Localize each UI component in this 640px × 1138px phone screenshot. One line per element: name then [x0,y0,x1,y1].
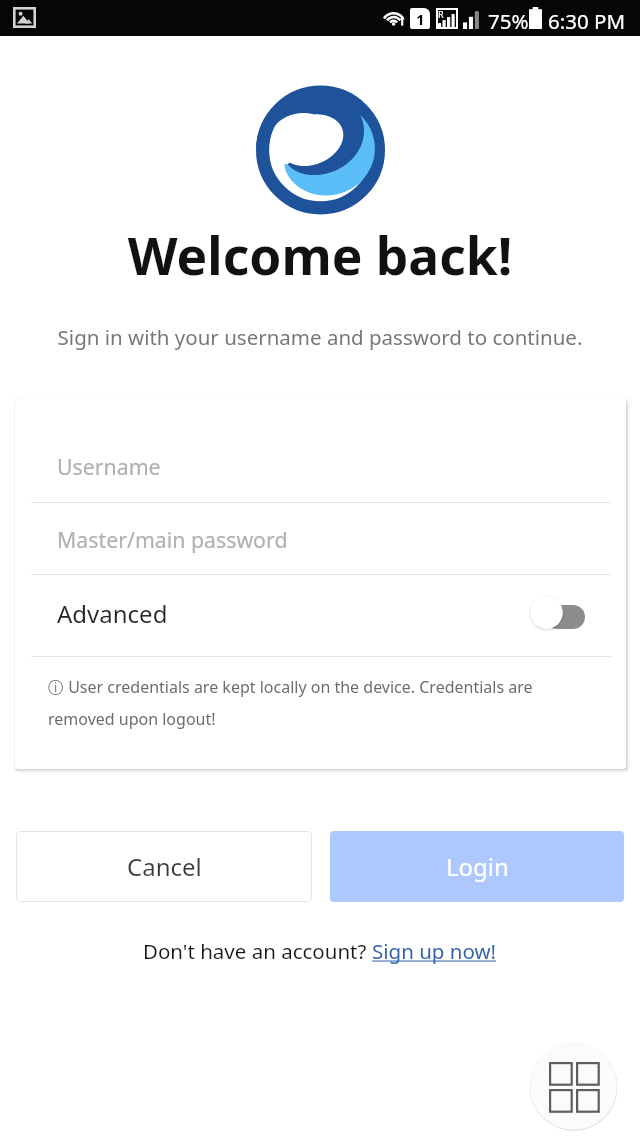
staticText: 75% [488,7,529,35]
staticText: Cancel [127,850,202,883]
staticText: ⓘ User credentials are kept locally on t… [48,676,558,730]
staticText: 1 [416,9,425,29]
staticText: Master/main password [57,525,288,554]
staticText: Sign up now! [372,937,497,965]
button[interactable]: Master/main password [57,505,557,574]
button[interactable]: Advanced [15,573,626,654]
button[interactable]: Username [57,430,557,502]
staticText: 6:30 PM [548,7,625,35]
staticText: Login [446,850,509,883]
staticText: Welcome back! [0,220,640,290]
button[interactable]: Sign up now! [372,937,497,965]
button[interactable]: Cancel [16,831,312,902]
staticText: Sign in with your username and password … [0,323,640,351]
staticText: Don't have an account? [143,937,372,965]
button[interactable]: Apps [530,1043,617,1130]
button[interactable]: Login [330,831,624,902]
staticText: Username [57,452,161,481]
staticText: R [438,8,444,20]
staticText: Advanced [57,597,168,630]
